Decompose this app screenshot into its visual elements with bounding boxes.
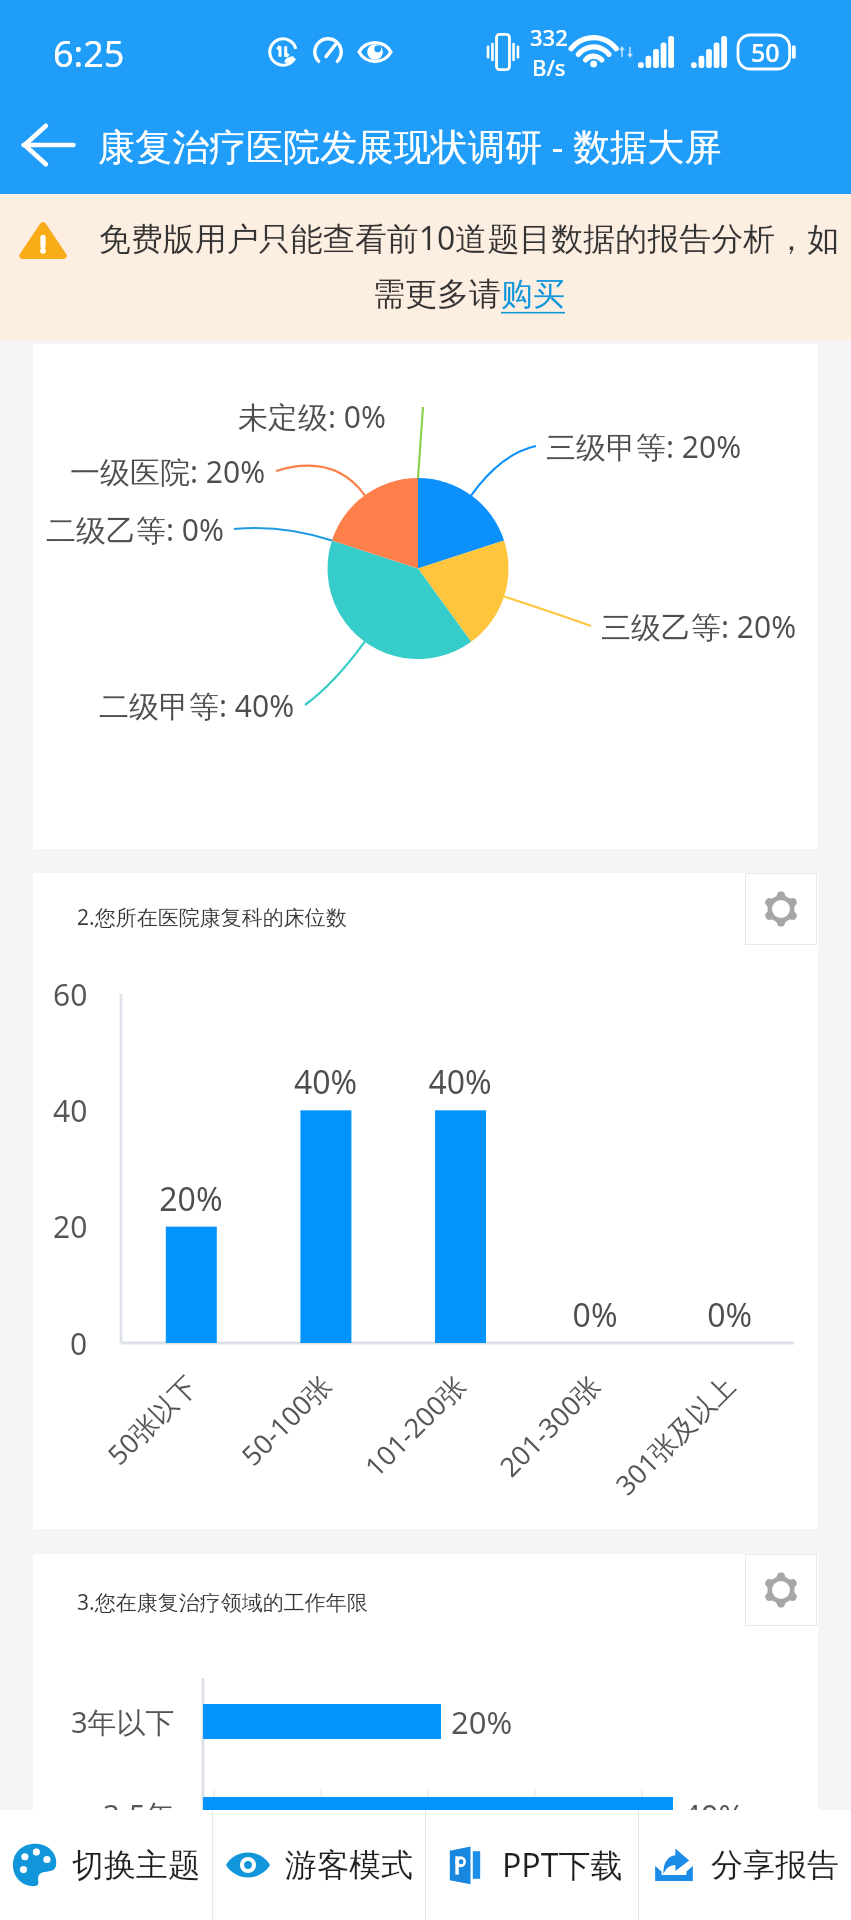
staticText: PPT下载 [502, 1843, 623, 1887]
staticText: B/s [532, 52, 566, 82]
staticText: 免费版用户只能查看前10道题目数据的报告分析，如需更多请购买 [93, 216, 845, 315]
staticText: 3.您在康复治疗领域的工作年限 [77, 1588, 368, 1617]
button[interactable]: Chart settings [745, 873, 817, 945]
button[interactable]: 游客模式 [213, 1810, 425, 1920]
button[interactable]: Back [0, 97, 96, 193]
button[interactable]: PPT下载 [426, 1810, 638, 1920]
staticText: 切换主题 [72, 1845, 200, 1885]
button[interactable]: 分享报告 [639, 1810, 851, 1920]
staticText: 分享报告 [711, 1845, 839, 1885]
button[interactable]: 切换主题 [0, 1810, 212, 1920]
staticText: 游客模式 [285, 1845, 413, 1885]
staticText: 6:25 [53, 29, 125, 78]
button[interactable] [33, 344, 818, 849]
staticText: 332 [530, 22, 568, 52]
staticText: 2.您所在医院康复科的床位数 [77, 903, 347, 932]
staticText: 康复治疗医院发展现状调研 - 数据大屏 [98, 120, 722, 171]
staticText: 50 [751, 35, 780, 69]
button[interactable]: Chart settings [745, 1554, 817, 1626]
